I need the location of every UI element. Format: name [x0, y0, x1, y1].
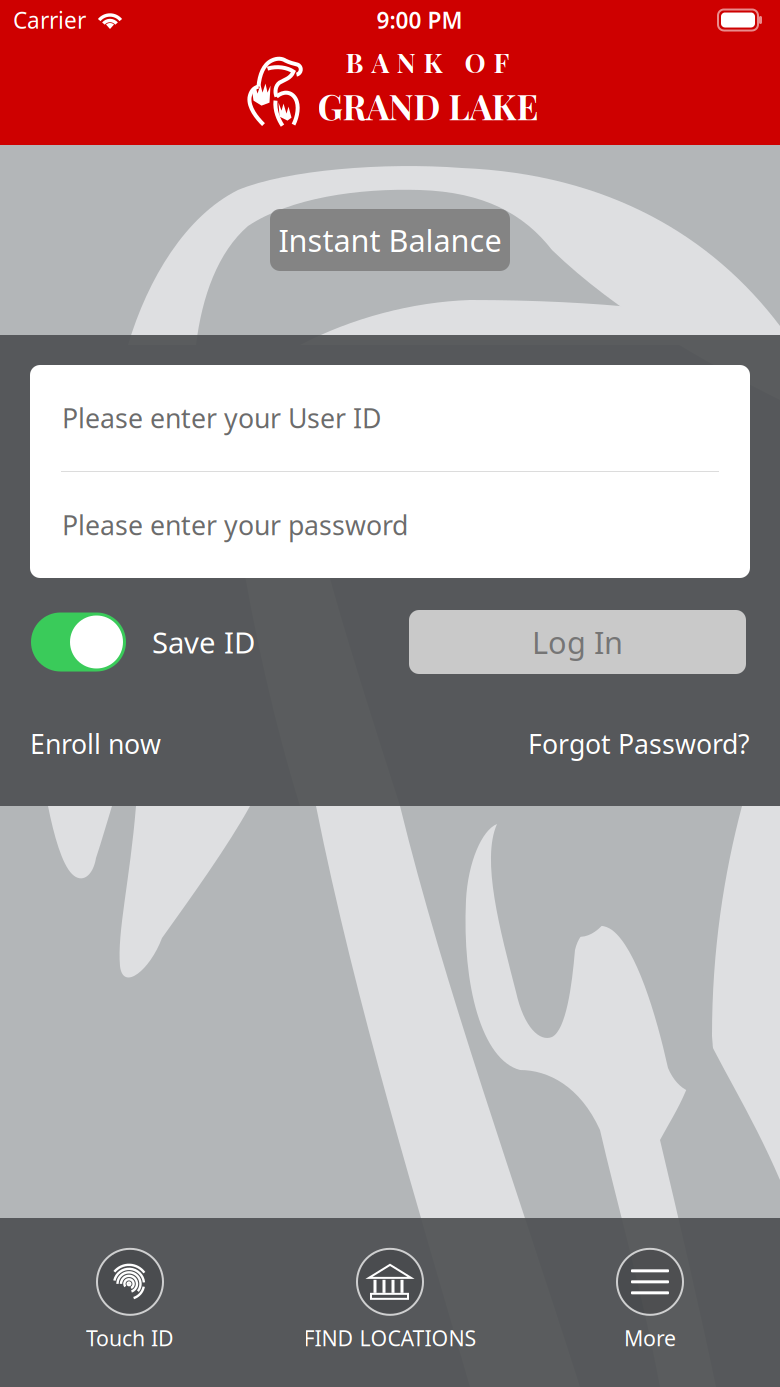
staticText: Log In	[532, 622, 623, 662]
button[interactable]: Log In	[409, 610, 746, 674]
staticText: Carrier	[13, 5, 86, 35]
staticText: Save ID	[152, 622, 255, 661]
button[interactable]: FIND LOCATIONS	[260, 1249, 520, 1352]
staticText: Instant Balance	[278, 220, 501, 260]
staticText: Enroll now	[30, 726, 161, 761]
staticText: 9:00 PM	[376, 5, 462, 35]
staticText: More	[624, 1324, 676, 1352]
staticText: Forgot Password?	[528, 726, 750, 761]
button[interactable]: Save ID	[31, 612, 255, 671]
staticText: Touch ID	[86, 1324, 174, 1352]
staticText: FIND LOCATIONS	[303, 1324, 476, 1352]
button[interactable]: Enroll now	[30, 726, 161, 761]
staticText: Please enter your User ID	[62, 400, 381, 436]
button[interactable]: Touch ID	[0, 1249, 260, 1352]
button[interactable]: Instant Balance	[270, 209, 510, 271]
staticText: BANK OF	[345, 44, 509, 80]
staticText: Please enter your password	[62, 507, 408, 543]
button[interactable]: Forgot Password?	[528, 726, 750, 761]
button[interactable]: More	[520, 1249, 780, 1352]
staticText: GRAND LAKE	[317, 83, 538, 129]
